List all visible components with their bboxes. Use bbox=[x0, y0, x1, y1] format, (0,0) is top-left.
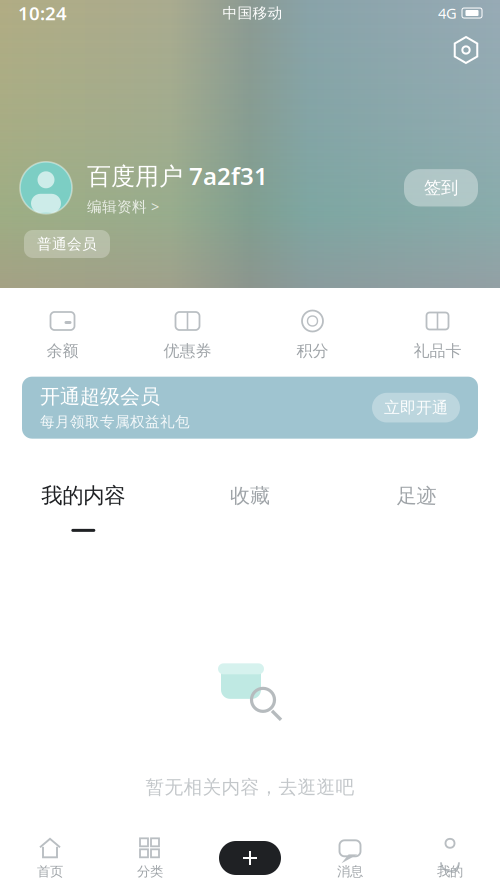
staticText: 百度用户 7a2f31 bbox=[87, 160, 268, 191]
staticText: 消息 bbox=[337, 863, 363, 880]
staticText: 立即开通 bbox=[384, 398, 448, 417]
button[interactable]: 设置 bbox=[444, 28, 488, 72]
staticText: 开通超级会员 bbox=[40, 384, 160, 409]
button[interactable]: 签到 bbox=[404, 169, 478, 206]
staticText: 中国移动 bbox=[222, 4, 282, 22]
staticText: 10:24 bbox=[18, 1, 67, 25]
button[interactable]: 我的 bbox=[400, 828, 500, 888]
button[interactable]: 我的内容 bbox=[0, 483, 167, 532]
staticText: 编辑资料 > bbox=[87, 196, 159, 216]
button[interactable]: 积分 bbox=[250, 306, 375, 363]
button[interactable]: 优惠券 bbox=[125, 306, 250, 363]
staticText: 足迹 bbox=[397, 483, 437, 508]
staticText: 我的 bbox=[437, 863, 463, 880]
staticText: 我的内容 bbox=[41, 483, 125, 509]
staticText: 余额 bbox=[46, 341, 78, 361]
staticText: 首页 bbox=[37, 863, 63, 880]
staticText: 礼品卡 bbox=[413, 341, 461, 361]
staticText: 优惠券 bbox=[163, 341, 211, 361]
staticText: 分类 bbox=[137, 863, 163, 880]
button[interactable]: 分类 bbox=[100, 828, 200, 888]
staticText: 4G bbox=[438, 3, 457, 23]
button[interactable]: 礼品卡 bbox=[375, 306, 500, 363]
button[interactable]: 开通超级会员 bbox=[22, 377, 478, 439]
staticText: 每月领取专属权益礼包 bbox=[40, 413, 190, 431]
button[interactable]: 发布 bbox=[200, 828, 300, 888]
staticText: 积分 bbox=[296, 341, 328, 361]
button[interactable]: 消息 bbox=[300, 828, 400, 888]
button[interactable]: 首页 bbox=[0, 828, 100, 888]
staticText: 暂无相关内容，去逛逛吧 bbox=[145, 776, 354, 799]
button[interactable]: 余额 bbox=[0, 306, 125, 363]
button[interactable]: 普通会员 bbox=[24, 230, 110, 258]
staticText: 签到 bbox=[424, 177, 458, 198]
button[interactable]: 足迹 bbox=[333, 483, 500, 531]
staticText: 收藏 bbox=[230, 483, 270, 508]
staticText: 普通会员 bbox=[37, 235, 97, 253]
button[interactable]: 收藏 bbox=[167, 483, 333, 531]
